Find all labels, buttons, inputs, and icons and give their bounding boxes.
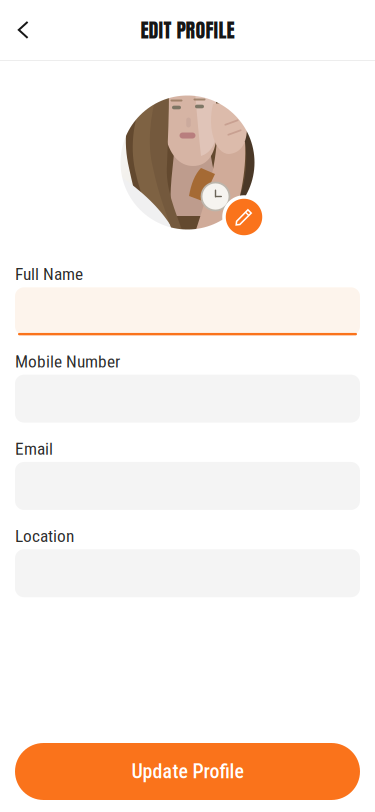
staticText: EDIT PROFILE xyxy=(140,15,234,45)
staticText: Full Name xyxy=(15,264,83,284)
staticText: Update Profile xyxy=(131,760,243,783)
staticText: Mobile Number xyxy=(15,351,120,372)
button[interactable]: Change profile photo xyxy=(224,197,264,237)
button[interactable]: Back xyxy=(1,8,45,52)
staticText: Location xyxy=(15,526,74,546)
button[interactable] xyxy=(15,287,360,335)
button[interactable]: Update Profile xyxy=(15,743,360,800)
staticText: Email xyxy=(15,439,53,459)
